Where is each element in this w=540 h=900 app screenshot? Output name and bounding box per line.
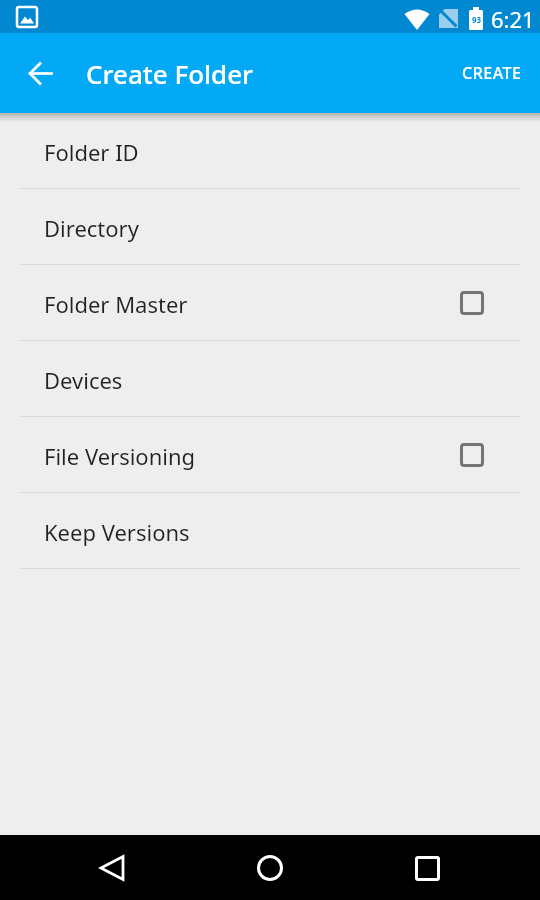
staticText: 93 — [472, 14, 482, 25]
staticText: Keep Versions — [44, 517, 190, 547]
button[interactable]: Devices — [0, 341, 540, 417]
button[interactable]: Keep Versions — [0, 493, 540, 569]
button[interactable]: CREATE — [444, 33, 540, 113]
staticText: File Versioning — [44, 441, 196, 471]
staticText: Devices — [44, 365, 123, 395]
staticText: Create Folder — [86, 56, 254, 91]
button[interactable] — [12, 45, 68, 101]
button[interactable]: Folder Master — [0, 265, 540, 341]
staticText: 6:21 — [491, 4, 535, 34]
button[interactable] — [84, 840, 140, 896]
button[interactable]: Folder ID — [0, 113, 540, 189]
button[interactable]: Directory — [0, 189, 540, 265]
staticText: Folder Master — [44, 289, 188, 319]
staticText: Directory — [44, 213, 139, 243]
staticText: Folder ID — [44, 137, 139, 167]
staticText: CREATE — [462, 62, 522, 84]
button[interactable]: File Versioning — [0, 417, 540, 493]
button[interactable] — [399, 840, 455, 896]
button[interactable] — [242, 840, 298, 896]
